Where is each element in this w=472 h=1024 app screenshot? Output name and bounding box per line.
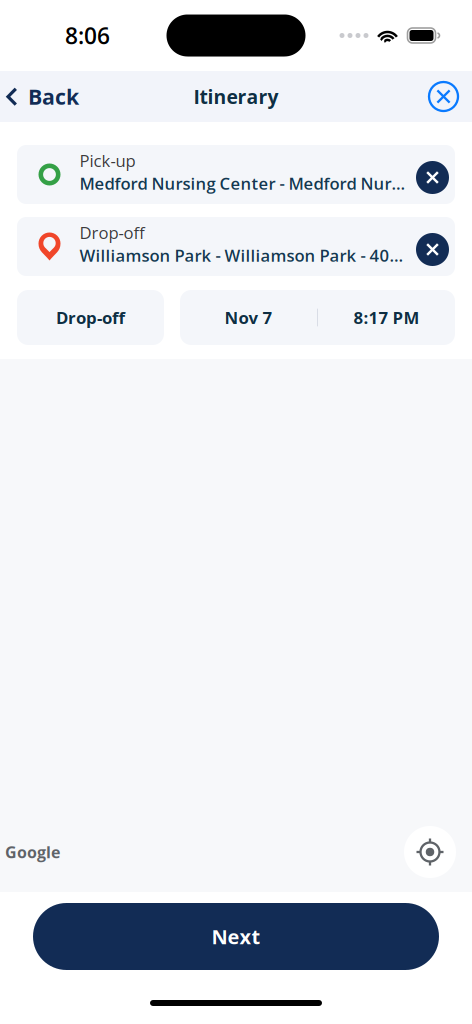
- staticText: Back: [28, 82, 79, 111]
- button[interactable]: My location: [404, 826, 456, 878]
- staticText: Pick-up: [79, 149, 135, 172]
- button[interactable]: Remove Drop-off: [409, 217, 455, 276]
- staticText: 8:06: [65, 20, 110, 51]
- button[interactable]: Drop-off: [17, 290, 164, 345]
- button[interactable]: Close: [415, 71, 472, 122]
- button[interactable]: Next: [33, 903, 439, 970]
- staticText: Drop-off: [79, 221, 144, 244]
- staticText: Nov 7: [224, 306, 272, 329]
- staticText: Next: [211, 923, 260, 950]
- button[interactable]: 8:17 PM: [318, 290, 455, 345]
- staticText: Drop-off: [56, 306, 125, 329]
- button[interactable]: Remove Pick-up: [409, 145, 455, 204]
- button[interactable]: Back: [0, 71, 89, 122]
- staticText: Itinerary: [193, 83, 278, 110]
- button[interactable]: Nov 7: [180, 290, 317, 345]
- staticText: Medford Nursing Center - Medford Nurs...: [79, 172, 409, 195]
- staticText: Google: [5, 841, 60, 863]
- staticText: 8:17 PM: [353, 306, 419, 329]
- staticText: Williamson Park - Williamson Park - 400.…: [79, 244, 409, 267]
